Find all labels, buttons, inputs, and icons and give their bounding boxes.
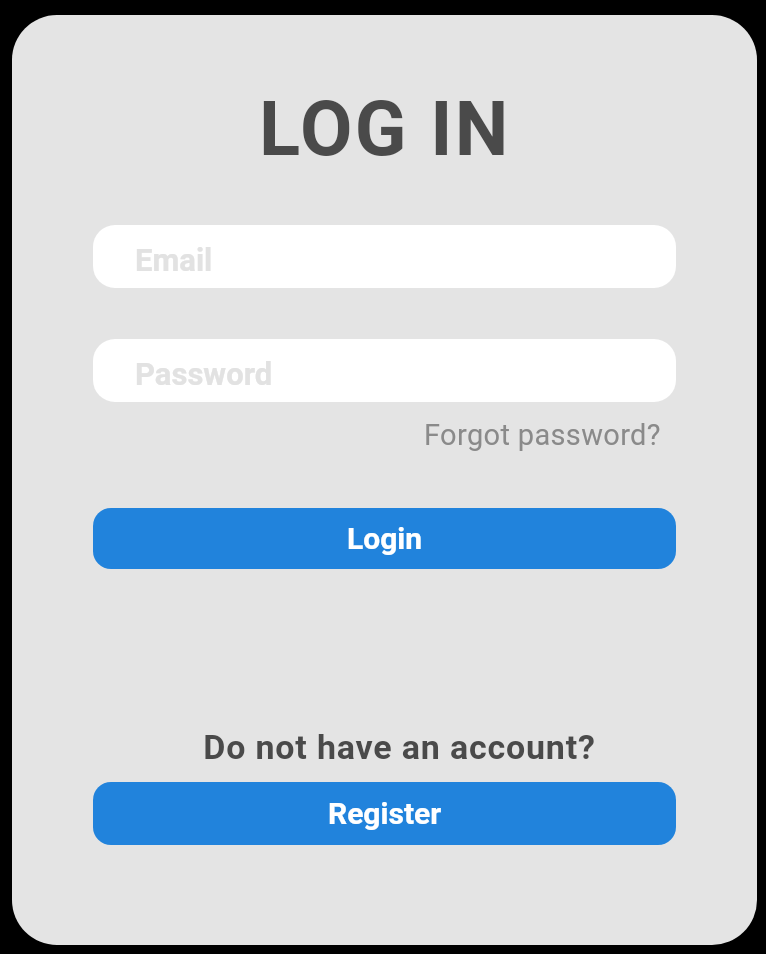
staticText: LOG IN — [259, 84, 511, 173]
button[interactable]: Email — [93, 225, 676, 288]
staticText: Do not have an account? — [203, 727, 596, 767]
button[interactable]: Forgot password? — [424, 418, 661, 452]
staticText: Register — [328, 796, 442, 831]
staticText: Login — [347, 521, 423, 556]
button[interactable]: Login — [93, 508, 676, 569]
staticText: Password — [135, 356, 273, 392]
button[interactable]: Register — [93, 782, 676, 845]
staticText: Email — [135, 242, 213, 278]
button[interactable]: Password — [93, 339, 676, 402]
